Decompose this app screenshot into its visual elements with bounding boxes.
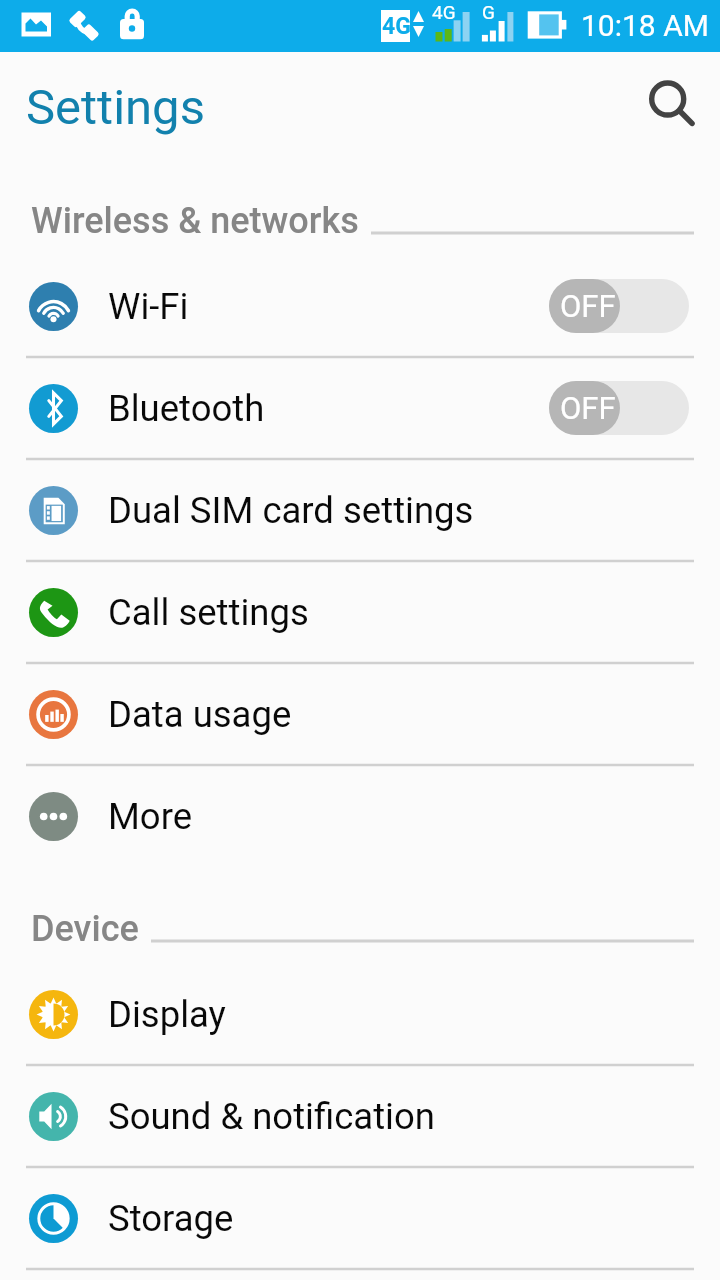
staticText: Display <box>108 993 226 1036</box>
staticText: OFF <box>560 288 616 324</box>
button[interactable]: Storage <box>0 1167 720 1269</box>
staticText: 10:18 AM <box>581 8 709 43</box>
staticText: 4G <box>432 1 456 23</box>
button[interactable]: More <box>0 765 720 867</box>
staticText: Wi-Fi <box>108 285 189 328</box>
button[interactable]: Bluetooth <box>0 357 720 459</box>
staticText: G <box>482 1 495 23</box>
staticText: Storage <box>108 1197 234 1240</box>
button[interactable]: Wi-Fi <box>0 255 720 357</box>
button[interactable]: Bluetooth switch, off <box>549 381 689 435</box>
staticText: Device <box>31 908 139 944</box>
staticText: Wireless & networks <box>31 200 359 236</box>
staticText: Data usage <box>108 693 292 736</box>
staticText: Call settings <box>108 591 309 634</box>
button[interactable]: Data usage <box>0 663 720 765</box>
button[interactable]: Wi-Fi switch, off <box>549 279 689 333</box>
staticText: Sound & notification <box>108 1095 435 1138</box>
staticText: Settings <box>26 79 205 136</box>
staticText: Dual SIM card settings <box>108 489 474 532</box>
staticText: Bluetooth <box>108 387 265 430</box>
button[interactable]: Sound & notification <box>0 1065 720 1167</box>
staticText: More <box>108 795 193 838</box>
staticText: 4G <box>382 13 411 40</box>
staticText: OFF <box>560 390 616 426</box>
button[interactable]: Call settings <box>0 561 720 663</box>
button[interactable]: Display <box>0 963 720 1065</box>
button[interactable]: Dual SIM card settings <box>0 459 720 561</box>
button[interactable]: Search <box>632 62 708 138</box>
